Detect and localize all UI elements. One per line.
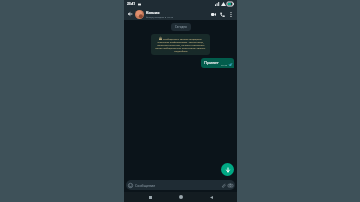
button[interactable]: Сообщения и звонки защищены	[151, 34, 210, 55]
button[interactable]: Back	[126, 10, 134, 18]
button[interactable]: Back	[207, 193, 215, 201]
button[interactable]: Recents	[146, 193, 154, 201]
button[interactable]: More options	[227, 10, 235, 18]
staticText: 23:41	[127, 2, 136, 6]
staticText: Подробнее.	[174, 49, 188, 52]
button[interactable]: Сообщение	[126, 180, 235, 190]
button[interactable]: Voice call	[218, 10, 227, 19]
staticText: 23:39	[221, 63, 228, 66]
button[interactable]: Contact photo	[135, 10, 144, 19]
staticText: Ксения	[146, 10, 160, 15]
button[interactable]: Scroll to bottom	[221, 163, 234, 176]
staticText: Сообщения и звонки защищены	[163, 37, 202, 40]
staticText: Привет	[204, 60, 219, 66]
button[interactable]: Video call	[209, 10, 218, 19]
staticText: включая WhatsApp, не могут прочитать	[157, 43, 205, 46]
staticText: Сегодня	[175, 25, 187, 29]
button[interactable]: Home	[177, 193, 185, 201]
staticText: ваши сообщения или прослушать звонки.	[155, 46, 206, 49]
staticText: Сообщение	[135, 183, 156, 188]
button[interactable]: Привет	[201, 58, 234, 68]
staticText: был(а) сегодня в 16:43	[146, 15, 174, 18]
staticText: сквозным шифрованием. Третьи лица,	[157, 40, 204, 43]
button[interactable]: Сегодня	[171, 23, 191, 31]
button[interactable]: Ксения	[146, 10, 209, 18]
